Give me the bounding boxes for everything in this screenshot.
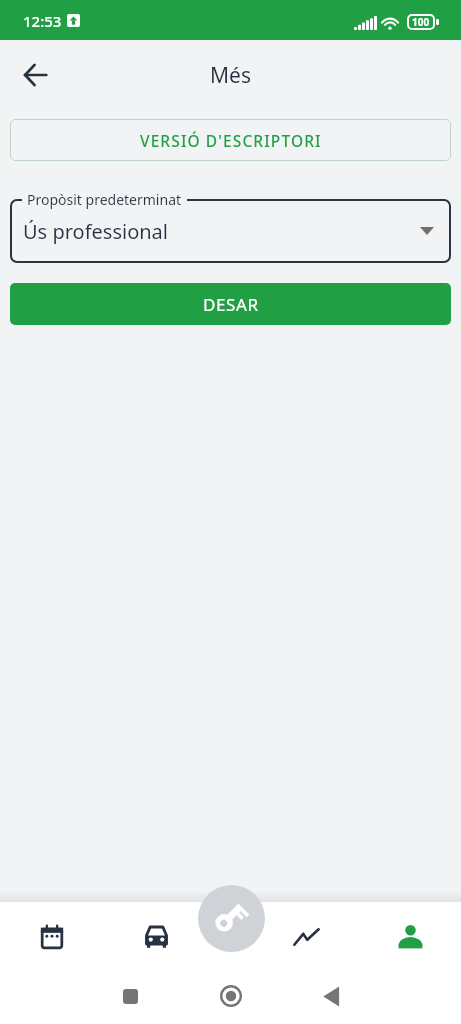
button[interactable]: Back [307, 972, 355, 1020]
button[interactable]: Recents [106, 972, 154, 1020]
button[interactable]: DESAR [10, 283, 451, 325]
button[interactable]: Keys [198, 885, 265, 952]
staticText: DESAR [203, 293, 259, 316]
button[interactable]: Statistics [275, 910, 337, 963]
button[interactable]: VERSIÓ D'ESCRIPTORI [10, 119, 451, 161]
staticText: Més [210, 61, 251, 90]
staticText: Propòsit predeterminat [27, 190, 182, 209]
button[interactable]: Back [11, 51, 59, 99]
staticText: 12:53 [23, 11, 62, 31]
staticText: 100 [412, 15, 430, 29]
button[interactable]: Home [207, 972, 255, 1020]
button[interactable]: Calendar [21, 910, 83, 963]
button[interactable]: Vehicles [125, 910, 187, 963]
button[interactable]: Ús professional [10, 199, 451, 263]
button[interactable]: Profile [379, 910, 441, 963]
staticText: Ús professional [23, 218, 168, 245]
staticText: VERSIÓ D'ESCRIPTORI [140, 130, 322, 151]
